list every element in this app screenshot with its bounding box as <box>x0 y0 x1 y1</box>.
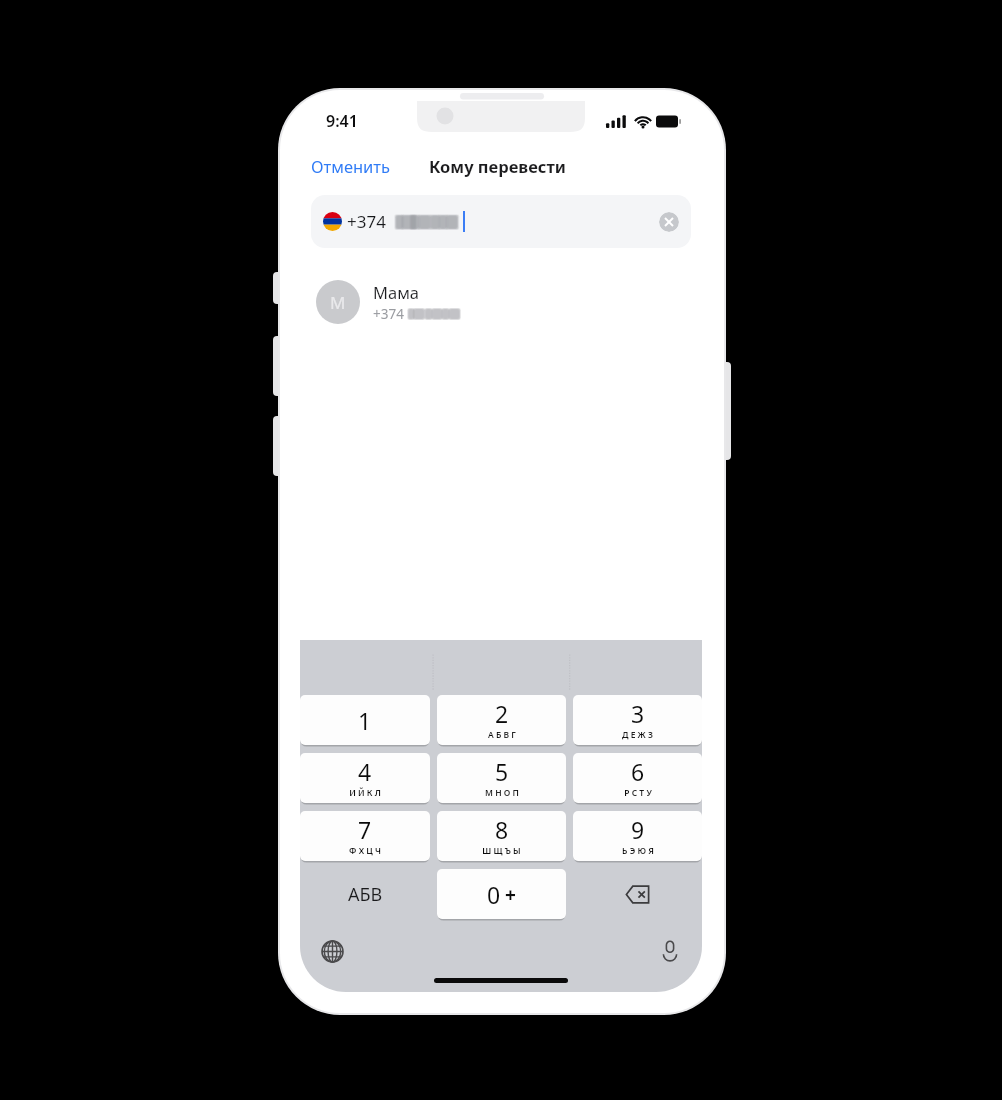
button[interactable]: 5 <box>437 753 566 803</box>
staticText: 5 <box>495 756 509 787</box>
staticText: 1 <box>358 705 372 736</box>
staticText: АБВ <box>348 882 383 907</box>
staticText: + <box>505 882 516 908</box>
button[interactable]: 1 <box>300 695 430 745</box>
staticText: Ь Э Ю Я <box>622 845 654 857</box>
staticText: Д Е Ж З <box>622 729 653 741</box>
button[interactable]: 4 <box>300 753 430 803</box>
staticText: M <box>330 291 346 314</box>
staticText: Отменить <box>311 155 391 177</box>
staticText: Р С Т У <box>624 787 652 799</box>
staticText: Мама <box>373 281 419 303</box>
staticText: И Й К Л <box>349 787 381 799</box>
staticText: А Б В Г <box>488 729 516 741</box>
staticText: Ф Х Ц Ч <box>349 845 381 857</box>
button[interactable]: 3 <box>573 695 702 745</box>
staticText: 8 <box>495 814 509 845</box>
button[interactable]: Удалить <box>573 869 702 919</box>
staticText: 7 <box>358 814 372 845</box>
button[interactable]: Сменить язык <box>316 935 348 967</box>
staticText: Кому перевести <box>429 155 566 177</box>
button[interactable]: 2 <box>437 695 566 745</box>
staticText: 9:41 <box>326 110 358 132</box>
button[interactable]: Очистить <box>659 212 679 232</box>
staticText: +374 <box>347 210 386 233</box>
staticText: 2 <box>495 698 509 729</box>
button[interactable]: Голосовой ввод <box>654 935 686 967</box>
button[interactable]: M <box>300 274 702 330</box>
staticText: Ш Щ Ъ Ы <box>482 845 521 857</box>
button[interactable]: 6 <box>573 753 702 803</box>
button[interactable]: 9 <box>573 811 702 861</box>
button[interactable]: +374 <box>311 195 691 248</box>
staticText: 0 <box>487 879 501 910</box>
staticText: 4 <box>358 756 372 787</box>
button[interactable]: 7 <box>300 811 430 861</box>
button[interactable]: 8 <box>437 811 566 861</box>
staticText: 3 <box>631 698 645 729</box>
staticText: +374 <box>373 305 404 323</box>
button[interactable]: 0 <box>437 869 566 919</box>
button[interactable]: Отменить <box>300 150 397 182</box>
staticText: 6 <box>631 756 645 787</box>
button[interactable]: АБВ <box>300 869 430 919</box>
staticText: 9 <box>631 814 645 845</box>
staticText: М Н О П <box>485 787 519 799</box>
